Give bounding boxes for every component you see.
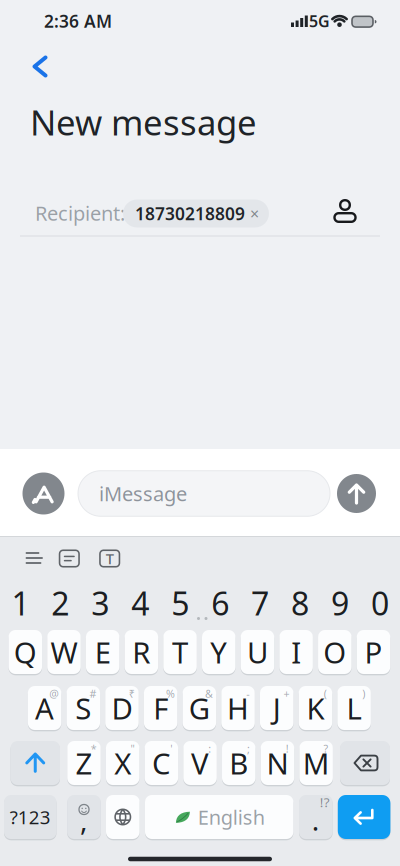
button[interactable]: M	[299, 741, 333, 785]
button[interactable]: F	[144, 686, 177, 730]
button[interactable]: 4	[121, 584, 159, 622]
staticText: Recipient:	[35, 200, 125, 226]
staticText: ;	[247, 741, 250, 756]
button[interactable]: 3	[81, 584, 119, 622]
button[interactable]: V	[183, 741, 217, 785]
button[interactable]	[338, 795, 390, 839]
button[interactable]: 18730218809	[123, 199, 269, 227]
button[interactable]: 9	[321, 584, 359, 622]
staticText: D	[111, 688, 132, 727]
button[interactable]: I	[279, 630, 313, 674]
staticText: V	[191, 743, 209, 782]
button[interactable]	[10, 741, 60, 785]
button[interactable]: T	[100, 550, 119, 567]
button[interactable]: English	[145, 795, 293, 839]
staticText: Z	[75, 743, 92, 782]
staticText: Y	[210, 632, 227, 671]
staticText: T	[172, 632, 188, 671]
button[interactable]: O	[318, 630, 352, 674]
button[interactable]	[330, 196, 360, 226]
button[interactable]: D	[105, 686, 139, 730]
staticText: !?	[320, 793, 330, 811]
button[interactable]: E	[86, 630, 119, 674]
staticText: W	[50, 632, 77, 671]
staticText: 5	[171, 582, 189, 624]
staticText: I	[291, 632, 301, 671]
button[interactable]	[340, 741, 390, 785]
button[interactable]: R	[125, 630, 158, 674]
button[interactable]: ?123	[4, 795, 56, 839]
button[interactable]: S	[66, 686, 100, 730]
button[interactable]: H	[221, 686, 255, 730]
button[interactable]: A	[28, 686, 61, 730]
staticText: -	[246, 686, 249, 701]
staticText: U	[247, 632, 268, 671]
button[interactable]: .	[299, 795, 333, 839]
button[interactable]: 8	[281, 584, 319, 622]
button[interactable]: X	[106, 741, 139, 785]
staticText: C	[152, 743, 171, 782]
button[interactable]: B	[222, 741, 255, 785]
button[interactable]	[25, 551, 43, 565]
staticText: 2:36 AM	[44, 9, 112, 32]
staticText: +	[283, 686, 289, 701]
button[interactable]: L	[337, 686, 371, 730]
button[interactable]	[106, 795, 140, 839]
staticText: J	[273, 688, 281, 727]
button[interactable]: G	[183, 686, 216, 730]
staticText: 7	[251, 582, 269, 624]
staticText: A	[35, 688, 54, 727]
button[interactable]: ,	[67, 795, 101, 839]
staticText: 2	[51, 582, 69, 624]
staticText: #	[89, 686, 96, 701]
staticText: B	[229, 743, 248, 782]
button[interactable]: 0	[361, 584, 399, 622]
staticText: P	[364, 632, 382, 671]
staticText: E	[95, 632, 111, 671]
staticText: ₹	[129, 686, 135, 701]
button[interactable]: 2	[41, 584, 79, 622]
button[interactable]: Q	[9, 630, 42, 674]
button[interactable]: 6	[201, 584, 239, 622]
staticText: ×	[250, 203, 259, 224]
staticText: iMessage	[99, 480, 187, 507]
staticText: '	[170, 741, 172, 756]
button[interactable]: C	[145, 741, 178, 785]
button[interactable]: 1	[1, 584, 39, 622]
button[interactable]	[59, 550, 79, 567]
staticText: :	[208, 741, 211, 756]
staticText: 5G	[309, 10, 330, 32]
button[interactable]: T	[163, 630, 197, 674]
button[interactable]	[337, 474, 376, 513]
button[interactable]: U	[241, 630, 274, 674]
staticText: Q	[14, 632, 37, 671]
button[interactable]: iMessage	[78, 471, 330, 516]
staticText: ?123	[10, 805, 51, 829]
button[interactable]: 5	[161, 584, 199, 622]
staticText: ?	[323, 741, 328, 756]
staticText: .	[312, 801, 320, 839]
staticText: !	[286, 741, 289, 756]
button[interactable]	[27, 55, 55, 78]
button[interactable]: J	[260, 686, 293, 730]
button[interactable]: K	[299, 686, 332, 730]
staticText: 18730218809	[135, 202, 245, 225]
staticText: 9	[331, 582, 349, 624]
button[interactable]: Y	[202, 630, 235, 674]
staticText: 4	[131, 582, 149, 624]
button[interactable]	[22, 472, 64, 514]
staticText: English	[198, 804, 265, 830]
button[interactable]: W	[47, 630, 81, 674]
staticText: 1	[11, 582, 29, 624]
staticText: ,	[80, 801, 88, 839]
staticText: (	[324, 686, 327, 701]
button[interactable]: Z	[67, 741, 101, 785]
staticText: R	[132, 632, 150, 671]
button[interactable]: N	[261, 741, 294, 785]
staticText: O	[323, 632, 346, 671]
staticText: %	[166, 686, 175, 701]
staticText: &	[205, 686, 213, 701]
button[interactable]: 7	[241, 584, 279, 622]
button[interactable]: P	[357, 630, 390, 674]
staticText: @	[49, 686, 59, 701]
